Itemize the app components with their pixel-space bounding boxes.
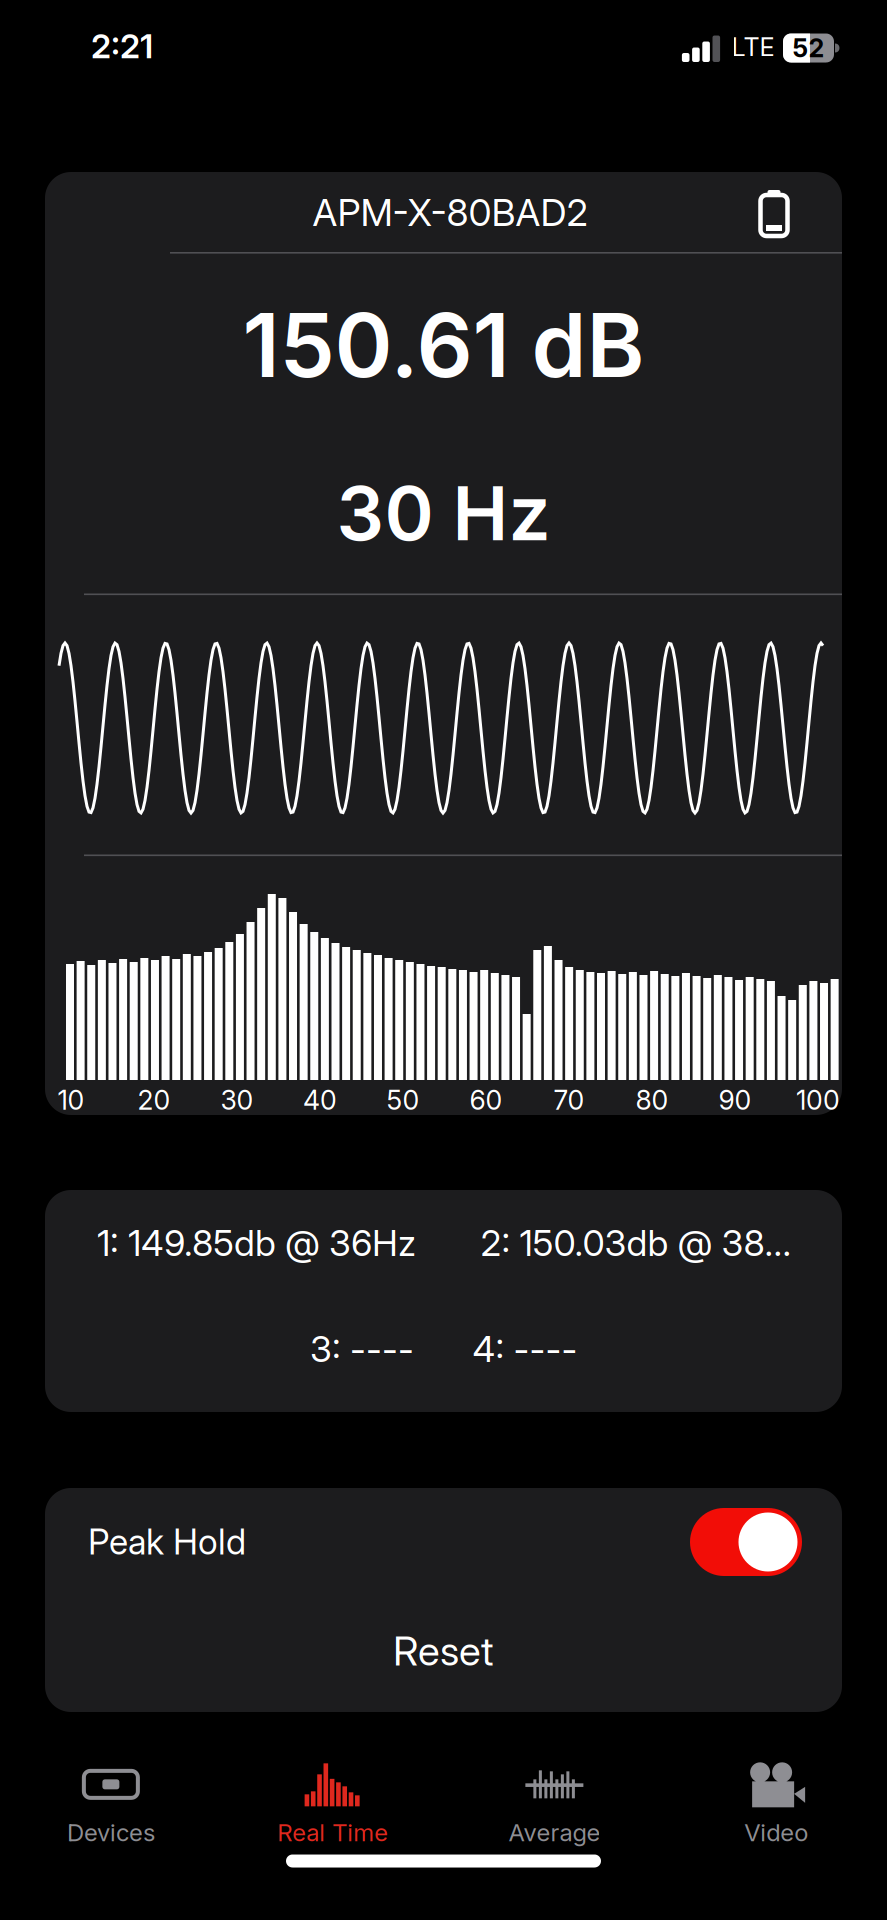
- staticText: 52: [792, 33, 824, 63]
- staticText: 4: ----: [472, 1328, 577, 1370]
- staticText: 2: 150.03db @ 38...: [480, 1222, 791, 1264]
- staticText: 60: [469, 1084, 502, 1116]
- staticText: 40: [303, 1084, 337, 1116]
- staticText: 10: [57, 1084, 84, 1116]
- staticText: 30: [220, 1084, 253, 1116]
- staticText: 70: [553, 1084, 584, 1116]
- staticText: Peak Hold: [88, 1522, 246, 1562]
- staticText: Video: [744, 1818, 808, 1847]
- staticText: 80: [635, 1084, 668, 1116]
- button[interactable]: Peak Hold: [690, 1508, 802, 1576]
- staticText: APM-X-80BAD2: [312, 190, 587, 234]
- staticText: Real Time: [277, 1818, 388, 1847]
- staticText: 100: [796, 1084, 840, 1116]
- staticText: Reset: [393, 1627, 494, 1675]
- staticText: Average: [508, 1818, 600, 1847]
- button[interactable]: Average: [443, 1759, 665, 1849]
- staticText: 1: 149.85db @ 36Hz: [97, 1222, 416, 1264]
- staticText: 150.61 dB: [242, 293, 644, 397]
- button[interactable]: Real Time: [222, 1759, 444, 1849]
- staticText: LTE: [731, 32, 774, 62]
- staticText: Devices: [67, 1818, 155, 1847]
- staticText: 30 Hz: [336, 469, 550, 557]
- staticText: 2:21: [91, 26, 153, 66]
- button[interactable]: Video: [665, 1759, 887, 1849]
- button[interactable]: Devices: [0, 1759, 222, 1849]
- staticText: 3: ----: [310, 1328, 414, 1370]
- staticText: 50: [386, 1084, 419, 1116]
- button[interactable]: Reset: [65, 1603, 822, 1699]
- staticText: 20: [137, 1084, 170, 1116]
- staticText: 90: [718, 1084, 751, 1116]
